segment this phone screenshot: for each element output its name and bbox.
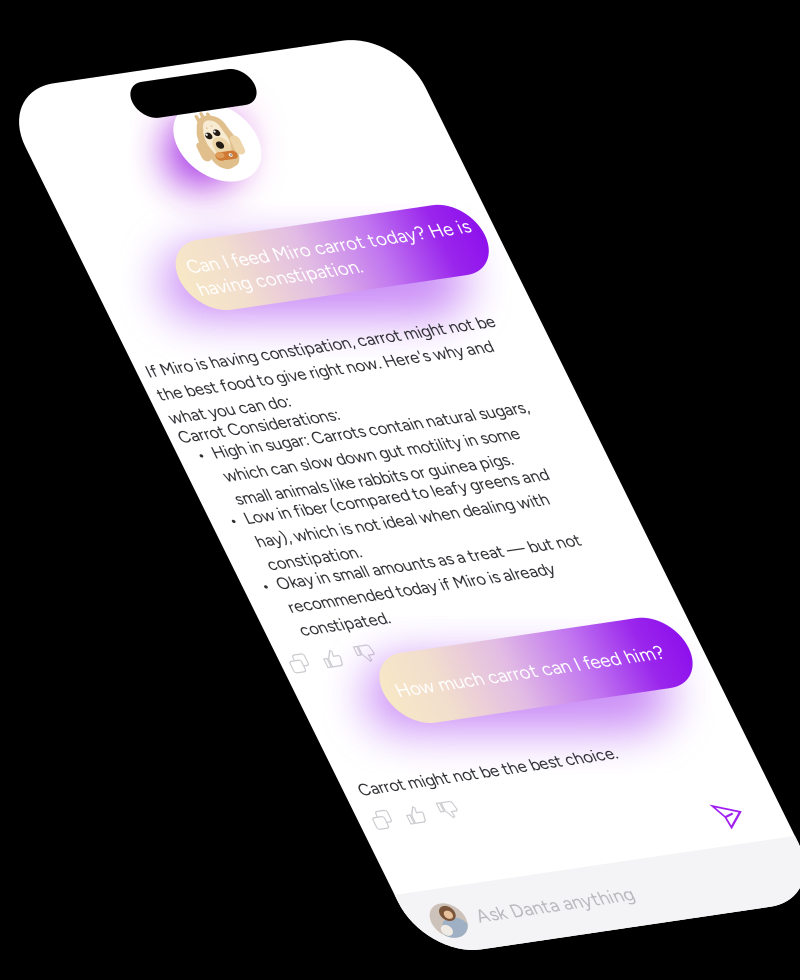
button[interactable]: Ask Danta anything [0, 897, 446, 967]
staticText: Can I feed Miro carrot today? He is havi… [106, 200, 421, 249]
button[interactable]: Can I feed Miro carrot today? He is havi… [92, 185, 432, 263]
staticText: If Miro is having constipation, carrot m… [10, 304, 398, 377]
staticText: Low in fiber (compared to leafy greens a… [37, 472, 375, 545]
staticText: High in sugar: Carrots contain natural s… [37, 399, 389, 472]
button[interactable]: Send [375, 852, 402, 879]
staticText: Carrot Considerations: [10, 377, 189, 398]
button[interactable]: How much carrot can I feed him? [92, 646, 432, 724]
staticText: How much carrot can I feed him? [106, 673, 404, 697]
staticText: Okay in small amounts as a treat — but n… [37, 545, 375, 618]
